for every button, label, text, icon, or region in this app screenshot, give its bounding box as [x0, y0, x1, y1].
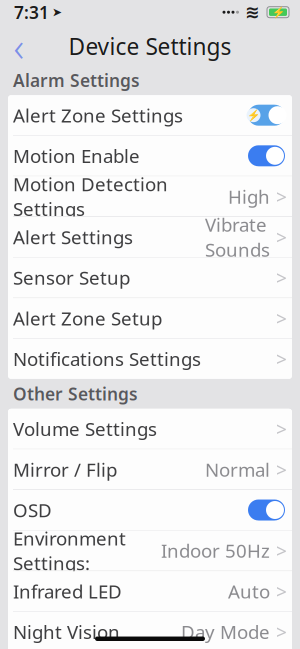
button[interactable]: Mirror / Flip	[8, 449, 292, 489]
staticText: >	[275, 578, 286, 604]
staticText: Motion Enable	[13, 143, 140, 168]
staticText: Normal	[205, 457, 270, 482]
button[interactable]: Alert Settings	[8, 217, 292, 257]
staticText: Environment Settings:	[13, 526, 126, 575]
staticText: Auto	[228, 579, 270, 604]
staticText: Day Mode	[181, 619, 270, 644]
staticText: ‹	[13, 20, 24, 73]
button[interactable]: Infrared LED	[8, 571, 292, 611]
staticText: ➤	[52, 5, 62, 19]
staticText: >	[275, 264, 286, 291]
staticText: Alarm Settings	[13, 69, 140, 92]
staticText: >	[275, 456, 286, 483]
button[interactable]: Sensor Setup	[8, 258, 292, 298]
staticText: Other Settings	[13, 382, 138, 405]
button[interactable]: Notifications Settings	[8, 339, 292, 379]
staticText: >	[275, 345, 286, 372]
staticText: Night Vision	[13, 619, 120, 644]
staticText: >	[275, 537, 286, 564]
button[interactable]: Alert Zone Settings	[8, 95, 292, 135]
staticText: Device Settings	[68, 31, 231, 61]
staticText: Mirror / Flip	[13, 457, 117, 482]
staticText: >	[275, 183, 286, 210]
staticText: ⚡	[247, 109, 260, 121]
staticText: >	[275, 415, 286, 442]
button[interactable]: Volume Settings	[8, 409, 292, 449]
staticText: Alert Settings	[13, 225, 133, 249]
staticText: ⚡	[271, 6, 284, 18]
staticText: High	[228, 184, 270, 209]
button[interactable]: Motion Enable	[8, 136, 292, 176]
staticText: >	[275, 618, 286, 645]
button[interactable]: Alert Zone Setup	[8, 298, 292, 338]
staticText: Indoor 50Hz	[161, 538, 270, 563]
staticText: Notifications Settings	[13, 346, 201, 371]
staticText: Volume Settings	[13, 416, 157, 441]
staticText: Alert Zone Settings	[13, 103, 183, 128]
staticText: Sensor Setup	[13, 265, 130, 290]
staticText: Vibrate Sounds	[205, 212, 270, 262]
staticText: >	[275, 305, 286, 331]
staticText: >	[275, 224, 286, 250]
button[interactable]: Environment Settings:	[8, 531, 292, 571]
staticText: ≋	[245, 2, 260, 22]
button[interactable]: OSD	[8, 490, 292, 530]
staticText: Infrared LED	[13, 579, 122, 604]
button[interactable]: Night Vision	[8, 612, 292, 649]
staticText: 7:31	[14, 1, 49, 24]
staticText: OSD	[13, 498, 52, 522]
button[interactable]: Back	[0, 27, 38, 65]
staticText: Motion Detection Settings	[13, 172, 168, 221]
button[interactable]: Motion Detection Settings	[8, 176, 292, 216]
staticText: Alert Zone Setup	[13, 306, 162, 331]
